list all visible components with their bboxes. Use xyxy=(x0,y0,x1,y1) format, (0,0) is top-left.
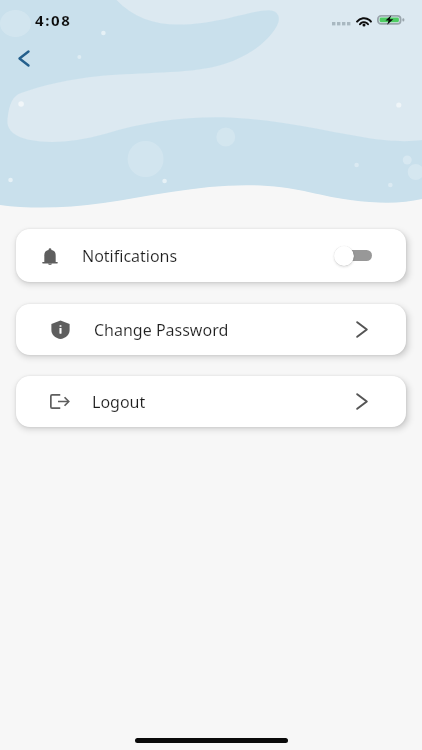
staticText: Notifications xyxy=(82,245,178,267)
button[interactable]: Logout xyxy=(16,376,406,427)
staticText: Logout xyxy=(92,391,146,413)
button[interactable]: Notifications xyxy=(16,229,406,282)
staticText: 4:08 xyxy=(35,10,72,30)
button[interactable]: Toggle notifications xyxy=(334,245,372,266)
button[interactable]: Change Password xyxy=(16,304,406,355)
staticText: Change Password xyxy=(94,319,229,341)
button[interactable]: Back xyxy=(7,41,41,75)
